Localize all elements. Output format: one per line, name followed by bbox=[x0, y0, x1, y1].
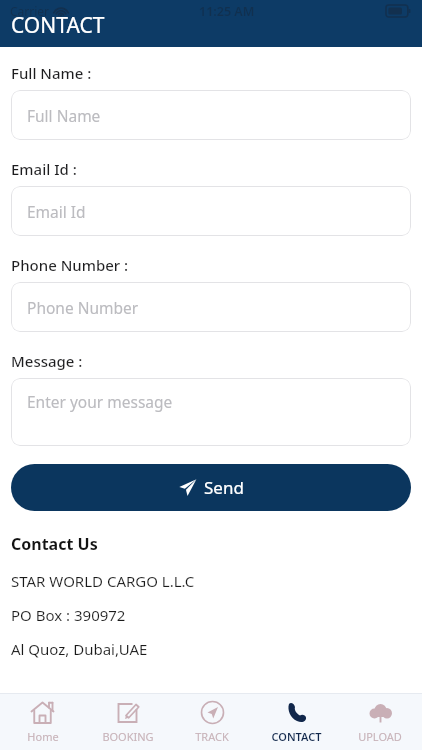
staticText: Message : bbox=[11, 351, 83, 371]
staticText: Al Quoz, Dubai,UAE bbox=[11, 639, 148, 659]
staticText: 11:25 AM bbox=[199, 3, 255, 20]
staticText: Carrier bbox=[10, 3, 50, 19]
staticText: Email Id : bbox=[11, 159, 77, 179]
staticText: Phone Number : bbox=[11, 255, 129, 275]
staticText: Home bbox=[27, 729, 59, 744]
staticText: UPLOAD bbox=[358, 729, 402, 744]
staticText: Email Id bbox=[27, 201, 86, 222]
button[interactable]: BOOKING bbox=[85, 694, 170, 750]
staticText: Enter your message bbox=[27, 391, 173, 412]
button[interactable]: Email Id bbox=[11, 186, 411, 236]
staticText: STAR WORLD CARGO L.L.C bbox=[11, 571, 195, 591]
staticText: Contact Us bbox=[11, 533, 98, 555]
button[interactable]: Send bbox=[11, 464, 411, 511]
staticText: BOOKING bbox=[102, 729, 154, 744]
staticText: PO Box : 390972 bbox=[11, 605, 126, 625]
staticText: Full Name : bbox=[11, 63, 92, 83]
staticText: Phone Number bbox=[27, 297, 139, 318]
button[interactable]: CONTACT bbox=[254, 694, 338, 750]
button[interactable]: Phone Number bbox=[11, 282, 411, 332]
button[interactable]: Enter your message bbox=[11, 378, 411, 446]
staticText: CONTACT bbox=[271, 729, 322, 744]
staticText: Full Name bbox=[27, 105, 101, 126]
button[interactable]: Home bbox=[0, 694, 85, 750]
staticText: TRACK bbox=[195, 729, 229, 744]
staticText: Send bbox=[204, 476, 244, 499]
button[interactable]: TRACK bbox=[170, 694, 254, 750]
button[interactable]: UPLOAD bbox=[338, 694, 422, 750]
staticText: CONTACT bbox=[11, 11, 105, 40]
button[interactable]: Full Name bbox=[11, 90, 411, 140]
